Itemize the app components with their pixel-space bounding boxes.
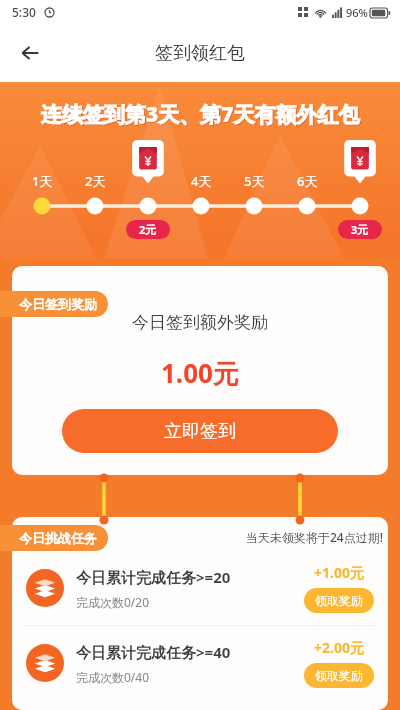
staticText: 1天	[32, 172, 53, 190]
staticText: 2元	[139, 222, 157, 237]
staticText: 领取奖励	[315, 593, 363, 608]
staticText: 完成次数0/40	[76, 669, 150, 685]
staticText: 立即签到	[164, 420, 236, 443]
staticText: +2.00元	[314, 638, 364, 657]
staticText: 今日签到奖励	[19, 296, 97, 312]
button[interactable]: 今日累计完成任务>=40	[12, 626, 388, 700]
staticText: 完成次数0/20	[76, 594, 150, 610]
staticText: 今日累计完成任务>=40	[76, 642, 231, 662]
staticText: 2天	[85, 172, 106, 190]
staticText: 1.00元	[161, 355, 239, 391]
staticText: 今日累计完成任务>=20	[76, 567, 231, 587]
staticText: 5天	[244, 172, 265, 190]
button[interactable]: 立即签到	[62, 409, 338, 453]
staticText: 今日挑战任务	[19, 530, 97, 546]
staticText: 6天	[297, 172, 318, 190]
staticText: 4天	[191, 172, 212, 190]
button[interactable]: Back	[8, 31, 52, 75]
staticText: 96%	[346, 5, 368, 20]
button[interactable]: 领取奖励	[304, 588, 374, 613]
staticText: 连续签到第3天、第7天有额外红包	[41, 100, 360, 129]
staticText: 签到领红包	[155, 42, 245, 65]
staticText: 连续签到第3天、第7天有额外红包	[42, 101, 361, 130]
staticText: 领取奖励	[315, 668, 363, 683]
button[interactable]: 今日累计完成任务>=20	[12, 551, 388, 625]
staticText: 3元	[351, 222, 369, 237]
staticText: +1.00元	[314, 563, 364, 582]
staticText: 5:30	[12, 4, 36, 20]
staticText: 今日签到额外奖励	[132, 312, 268, 333]
staticText: 当天未领奖将于24点过期!	[246, 529, 384, 545]
button[interactable]: 领取奖励	[304, 663, 374, 688]
